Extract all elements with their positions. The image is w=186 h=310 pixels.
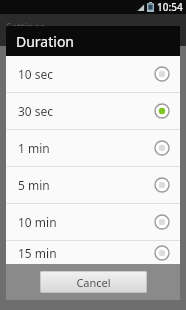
staticText: 1 min — [18, 140, 50, 156]
staticText: Duration — [16, 32, 75, 51]
staticText: 30 sec — [18, 103, 54, 119]
button[interactable]: 10 sec — [6, 56, 180, 92]
button[interactable]: 30 sec — [6, 93, 180, 129]
staticText: 10 sec — [18, 66, 54, 82]
button[interactable]: Cancel — [40, 271, 147, 293]
button[interactable]: 10 min — [6, 204, 180, 240]
staticText: 10 min — [18, 214, 57, 230]
staticText: 15 min — [18, 245, 57, 261]
button[interactable]: 5 min — [6, 167, 180, 203]
staticText: 5 min — [18, 177, 50, 193]
button[interactable]: 1 min — [6, 130, 180, 166]
staticText: 10:54 — [157, 0, 183, 14]
button[interactable]: 15 min — [6, 241, 180, 264]
staticText: Cancel — [76, 275, 111, 290]
staticText: Settings — [6, 20, 45, 34]
